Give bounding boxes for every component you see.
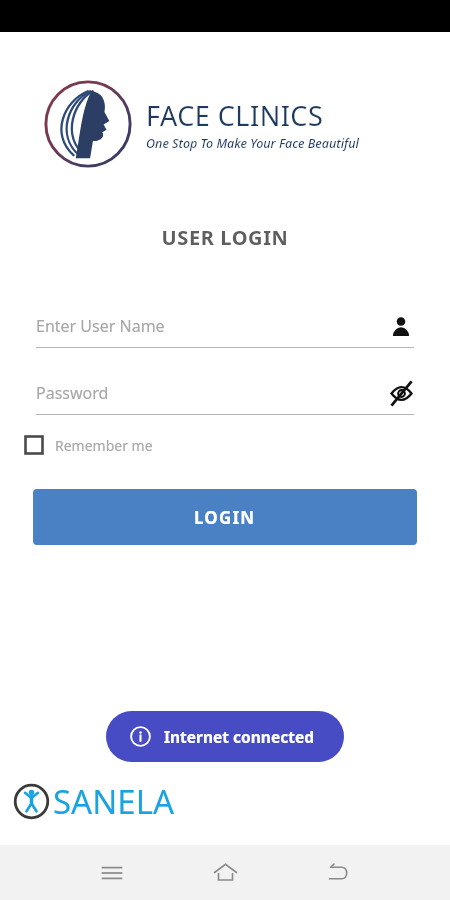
button[interactable]: Enter User Name [36,309,414,348]
staticText: One Stop To Make Your Face Beautiful [146,135,359,152]
button[interactable]: LOGIN [33,489,417,545]
staticText: Password [36,382,388,404]
button[interactable]: Internet connected [106,711,344,762]
button[interactable]: Back [304,845,372,900]
staticText: Internet connected [164,726,314,747]
staticText: LOGIN [194,506,256,529]
staticText: Enter User Name [36,315,388,337]
button[interactable]: Home [191,845,259,900]
staticText: SANELA [53,779,175,824]
button[interactable]: User name [388,313,414,339]
staticText: Remember me [55,436,153,455]
staticText: FACE CLINICS [146,97,324,134]
button[interactable]: Password [36,376,414,415]
staticText: USER LOGIN [0,224,450,251]
button[interactable]: Remember me [20,429,157,461]
button[interactable]: Recent apps [78,845,146,900]
button[interactable]: Show password [388,380,414,406]
